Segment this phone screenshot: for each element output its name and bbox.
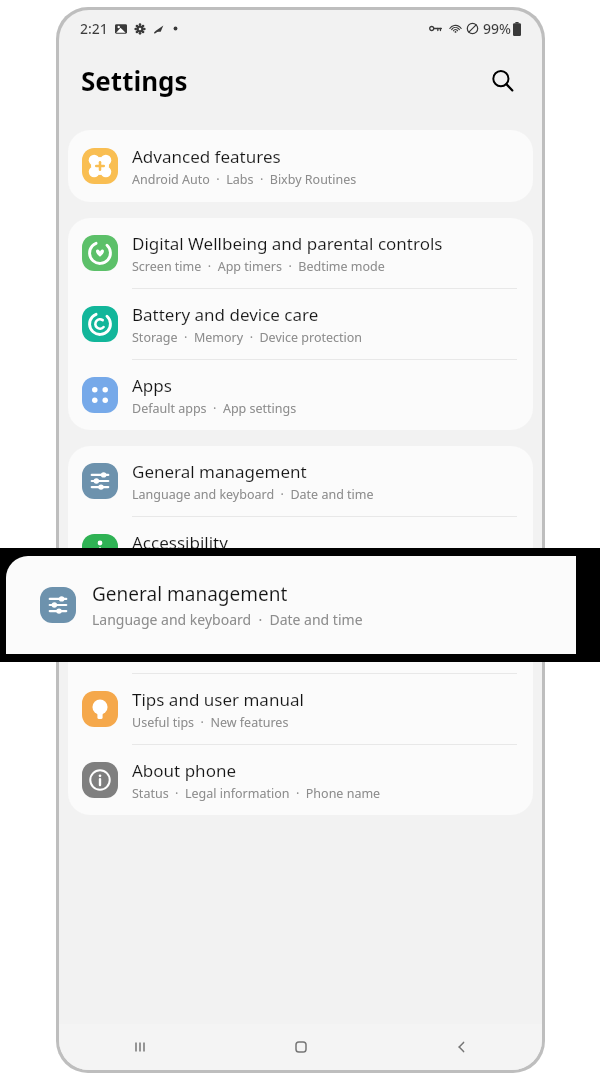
staticText: Default apps · App settings [132,400,297,417]
staticText: Battery and device care [132,303,319,326]
button[interactable]: Advanced features [68,130,533,202]
button[interactable]: Battery and device care [68,289,533,359]
staticText: Apps [132,374,172,397]
staticText: 99% [483,19,511,38]
button[interactable]: Accessibility [68,517,533,587]
button[interactable]: Tips and user manual [68,674,533,744]
staticText: Tips and user manual [132,688,304,711]
button[interactable]: Recent apps [59,1024,220,1070]
staticText: Android Auto · Labs · Bixby Routines [132,171,357,188]
staticText: Storage · Memory · Device protection [132,329,363,346]
staticText: 2:21 [80,19,108,38]
button[interactable]: Apps [68,360,533,430]
staticText: Language and keyboard · Date and time [132,486,374,503]
staticText: General management [92,581,288,607]
staticText: Download and install [132,643,256,660]
staticText: General management [132,460,307,483]
button[interactable]: Software update [68,603,533,673]
staticText: Advanced features [132,145,281,168]
staticText: Useful tips · New features [132,714,289,731]
button[interactable]: General management [68,446,533,516]
staticText: Screen time · App timers · Bedtime mode [132,258,385,275]
button[interactable]: General management [6,556,576,654]
staticText: Software update [132,617,264,640]
button[interactable]: Search [480,58,524,102]
button[interactable]: Digital Wellbeing and parental controls [68,218,533,288]
staticText: About phone [132,759,237,782]
staticText: Language and keyboard · Date and time [92,610,363,629]
staticText: Status · Legal information · Phone name [132,785,381,802]
staticText: Accessibility [132,531,228,554]
staticText: Settings [81,63,188,98]
button[interactable]: Home [220,1024,381,1070]
button[interactable]: About phone [68,745,533,815]
button[interactable]: Back [381,1024,542,1070]
staticText: Digital Wellbeing and parental controls [132,232,443,255]
